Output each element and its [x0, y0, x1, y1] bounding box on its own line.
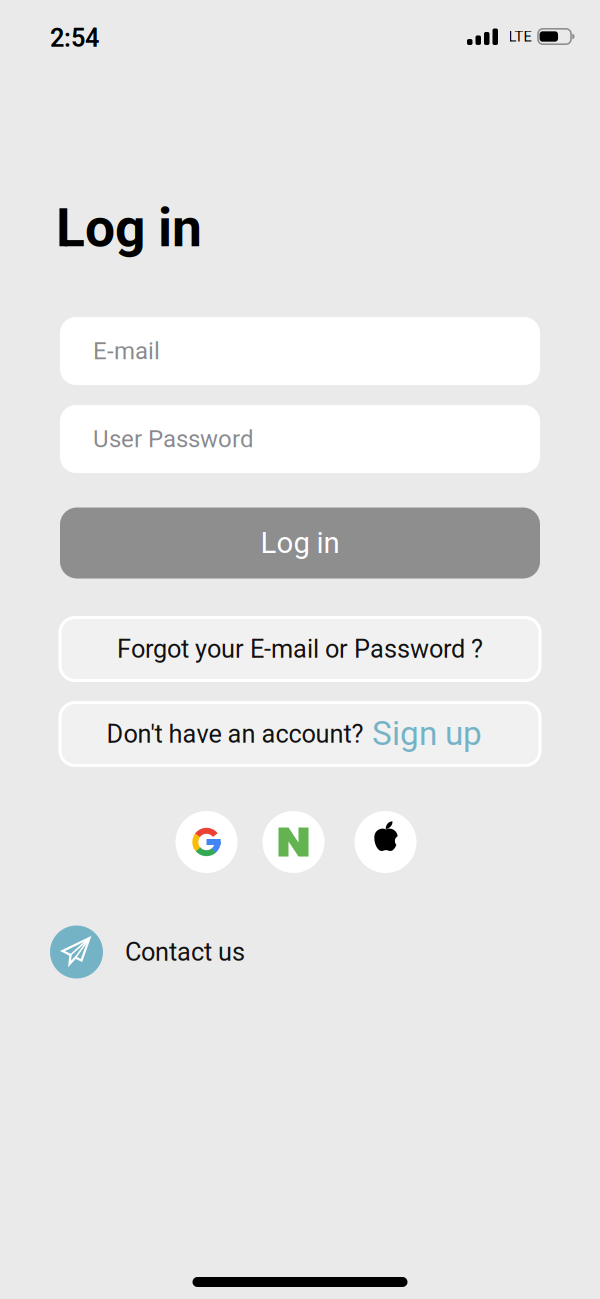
staticText: Contact us [125, 937, 245, 966]
staticText: User Password [93, 425, 254, 453]
staticText: 2:54 [50, 23, 99, 52]
button[interactable]: Log in with Google [175, 811, 237, 873]
staticText: Forgot your E-mail or Password ? [117, 634, 483, 663]
staticText: Log in [56, 197, 202, 258]
button[interactable]: E-mail [60, 317, 540, 385]
button[interactable]: Forgot your E-mail or Password ? [60, 617, 540, 680]
button[interactable]: Don't have an account? [60, 702, 540, 765]
staticText: E-mail [93, 337, 160, 365]
staticText: LTE [508, 28, 531, 45]
button[interactable]: Contact us [49, 922, 349, 982]
button[interactable]: Log in with Apple [354, 811, 416, 873]
button[interactable]: Log in with Naver [262, 811, 324, 873]
staticText: Sign up [372, 714, 482, 753]
staticText: Don't have an account? [106, 719, 363, 748]
button[interactable]: Log in [60, 507, 540, 578]
staticText: Log in [260, 526, 339, 560]
button[interactable]: User Password [60, 405, 540, 473]
